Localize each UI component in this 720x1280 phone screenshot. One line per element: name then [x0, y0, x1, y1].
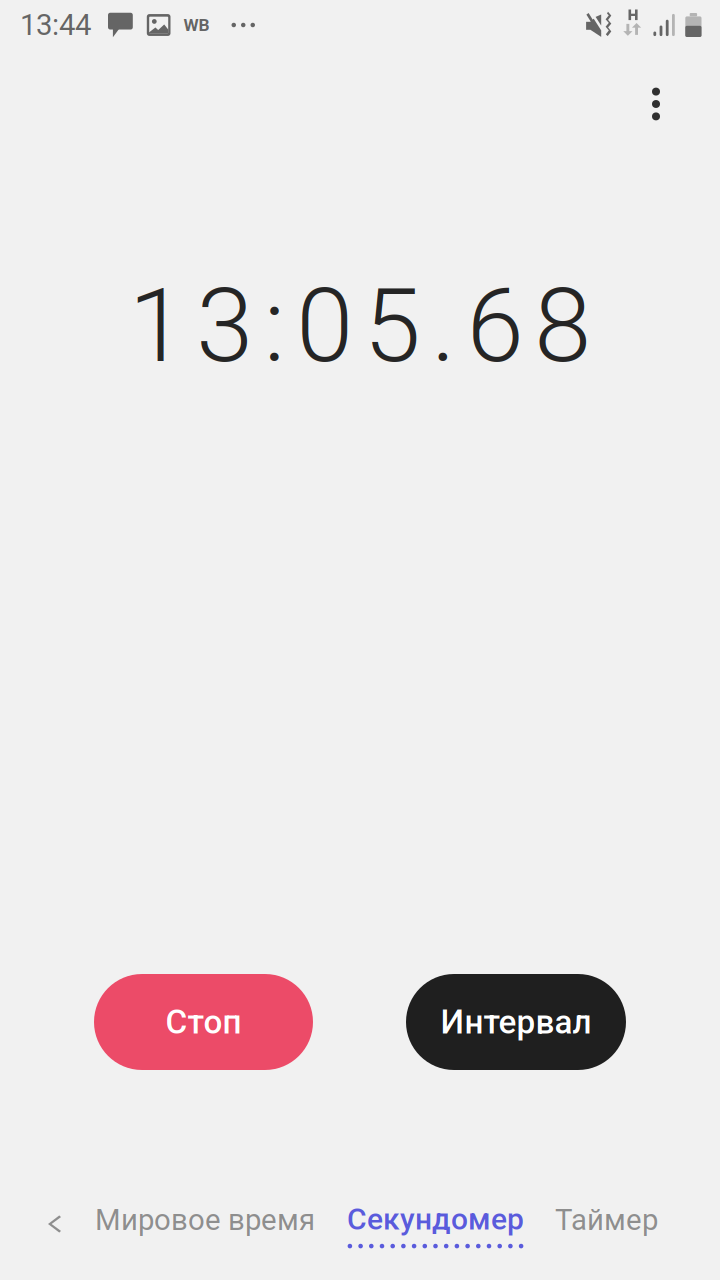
staticText: 13:44	[20, 8, 91, 42]
button[interactable]: Секундомер	[331, 1186, 540, 1266]
staticText: Стоп	[165, 1002, 241, 1042]
staticText: Таймер	[555, 1203, 658, 1237]
button[interactable]: Previous tab	[30, 1186, 79, 1266]
staticText: 13:05.68	[129, 266, 591, 386]
staticText: WB	[183, 15, 209, 35]
button[interactable]: Таймер	[540, 1186, 673, 1266]
button[interactable]: More options	[608, 50, 704, 158]
button[interactable]: Стоп	[94, 974, 313, 1070]
button[interactable]: Мировое время	[79, 1186, 331, 1266]
staticText: Секундомер	[347, 1202, 524, 1237]
staticText: Интервал	[440, 1002, 591, 1042]
button[interactable]: Интервал	[406, 974, 626, 1070]
staticText: Мировое время	[95, 1203, 315, 1237]
